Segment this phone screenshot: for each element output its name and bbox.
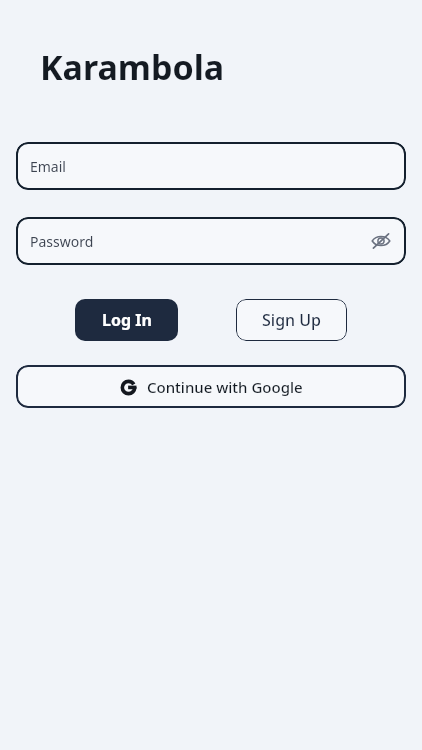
staticText: Karambola bbox=[40, 44, 225, 90]
staticText: Password bbox=[30, 232, 94, 251]
staticText: Log In bbox=[102, 309, 152, 331]
staticText: Sign Up bbox=[262, 309, 321, 331]
button[interactable]: Log In bbox=[75, 299, 178, 341]
button[interactable]: Sign Up bbox=[236, 299, 347, 341]
button[interactable]: Email bbox=[16, 142, 406, 190]
staticText: Email bbox=[30, 157, 66, 176]
staticText: Continue with Google bbox=[147, 377, 303, 397]
button[interactable]: Continue with Google bbox=[16, 365, 406, 408]
button[interactable]: Password bbox=[16, 217, 406, 265]
button[interactable]: Show password bbox=[364, 224, 398, 258]
